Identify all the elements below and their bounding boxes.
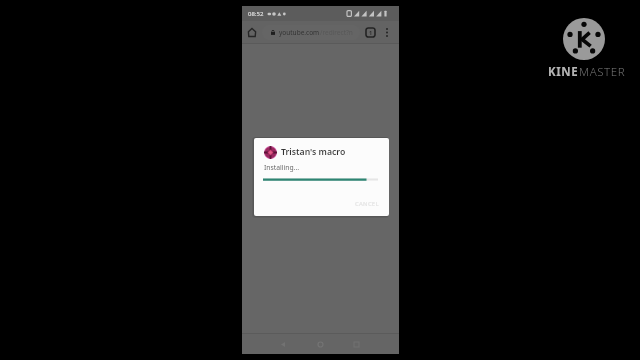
staticText: Tristan's macro <box>281 146 346 158</box>
staticText: KINE <box>548 64 579 80</box>
button[interactable]: More options <box>379 21 395 44</box>
button[interactable]: Open tabs <box>362 21 379 44</box>
staticText: Installing… <box>264 163 300 172</box>
staticText: 1 <box>369 29 373 36</box>
button[interactable]: Home <box>242 21 262 44</box>
staticText: /redirect?n <box>320 28 353 37</box>
staticText: 08:52 <box>248 10 264 18</box>
staticText: CANCEL <box>355 200 379 208</box>
button[interactable]: youtube.com <box>262 25 360 40</box>
button[interactable]: CANCEL <box>351 196 383 212</box>
staticText: youtube.com <box>279 28 320 37</box>
staticText: MASTER <box>579 64 626 80</box>
